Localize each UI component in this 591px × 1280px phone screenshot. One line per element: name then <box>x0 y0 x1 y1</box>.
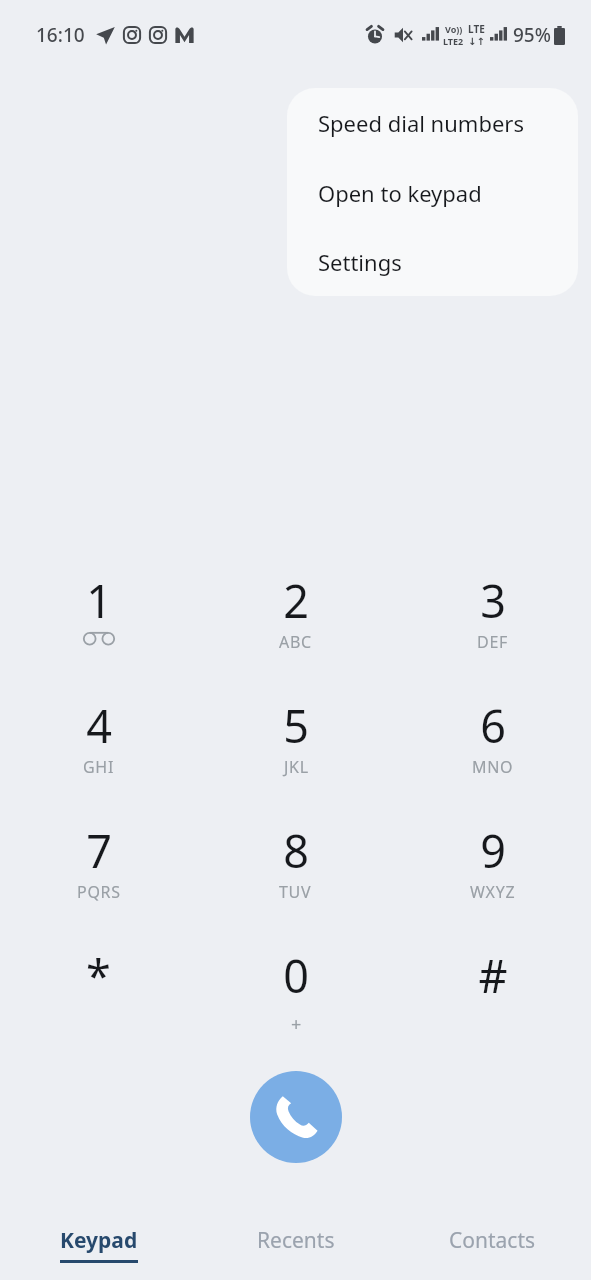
button[interactable]: Settings <box>287 227 578 296</box>
staticText: WXYZ <box>470 881 516 903</box>
staticText: ABC <box>279 631 312 653</box>
staticText: 3 <box>480 570 506 631</box>
staticText: * <box>86 945 111 1006</box>
staticText: 1 <box>86 570 112 631</box>
staticText: 0 <box>283 945 309 1006</box>
staticText: Settings <box>318 247 402 277</box>
button[interactable]: Recents <box>197 1218 394 1280</box>
staticText: 5 <box>283 695 309 756</box>
button[interactable]: Keypad <box>0 1218 197 1280</box>
button[interactable]: 2 <box>197 570 394 695</box>
button[interactable]: 9 <box>394 820 591 945</box>
staticText: 95% <box>513 22 551 48</box>
staticText: JKL <box>284 756 309 778</box>
button[interactable]: 0 <box>197 945 394 1070</box>
staticText: MNO <box>472 756 514 778</box>
staticText: Keypad <box>60 1226 138 1255</box>
button[interactable]: 5 <box>197 695 394 820</box>
button[interactable]: 6 <box>394 695 591 820</box>
staticText: Open to keypad <box>318 178 482 208</box>
staticText: DEF <box>477 631 508 653</box>
button[interactable]: Speed dial numbers <box>287 88 578 158</box>
button[interactable]: 3 <box>394 570 591 695</box>
staticText: Recents <box>257 1226 335 1255</box>
staticText: # <box>478 945 508 1006</box>
button[interactable]: Open to keypad <box>287 158 578 227</box>
button[interactable]: Call <box>250 1071 342 1163</box>
staticText: + <box>291 1012 302 1037</box>
staticText: 16:10 <box>36 22 85 48</box>
staticText: 7 <box>86 820 112 881</box>
button[interactable]: 7 <box>0 820 197 945</box>
staticText: ↓↑ <box>468 36 485 48</box>
button[interactable]: 8 <box>197 820 394 945</box>
staticText: Speed dial numbers <box>318 108 524 138</box>
staticText: 2 <box>283 570 309 631</box>
button[interactable]: # <box>394 945 591 1070</box>
staticText: 8 <box>283 820 309 881</box>
staticText: LTE <box>468 22 485 36</box>
staticText: 6 <box>480 695 506 756</box>
staticText: GHI <box>83 756 115 778</box>
staticText: TUV <box>279 881 312 903</box>
staticText: PQRS <box>77 881 121 903</box>
button[interactable]: 4 <box>0 695 197 820</box>
button[interactable]: * <box>0 945 197 1070</box>
staticText: LTE2 <box>443 35 464 47</box>
staticText: 4 <box>86 695 112 756</box>
staticText: 9 <box>480 820 506 881</box>
staticText: Vo)) <box>445 23 463 35</box>
staticText: Contacts <box>449 1226 536 1255</box>
button[interactable]: 1 <box>0 570 197 695</box>
button[interactable]: Contacts <box>394 1218 591 1280</box>
